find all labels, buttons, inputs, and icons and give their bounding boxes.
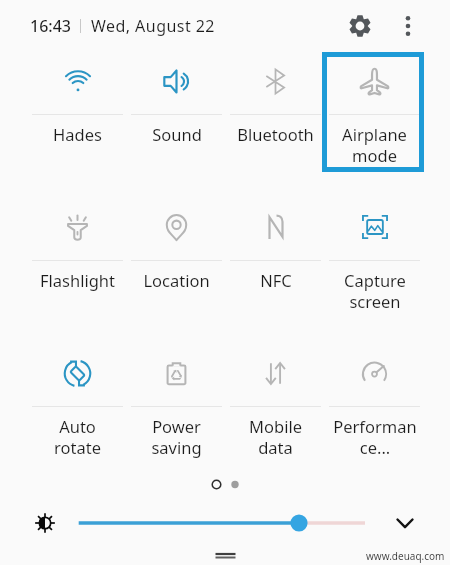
staticText: NFC: [260, 269, 292, 291]
button[interactable]: Auto rotate: [28, 344, 127, 464]
button[interactable]: Bluetooth: [226, 52, 325, 172]
staticText: Location: [143, 269, 210, 291]
staticText: Sound: [152, 123, 202, 145]
staticText: Power saving: [151, 415, 202, 459]
button[interactable]: Flashlight: [28, 198, 127, 318]
button[interactable]: Power saving: [127, 344, 226, 464]
button[interactable]: Sound: [127, 52, 226, 172]
staticText: Auto rotate: [54, 415, 101, 459]
button[interactable]: More options: [388, 6, 428, 46]
staticText: Airplane mode: [342, 123, 407, 167]
button[interactable]: Performan ce...: [325, 344, 424, 464]
button[interactable]: Expand quick settings: [388, 506, 422, 540]
staticText: Wed, August 22: [91, 15, 215, 37]
staticText: Hades: [53, 123, 102, 145]
staticText: Performan ce...: [333, 415, 417, 459]
staticText: www.deuaq.com: [366, 549, 445, 563]
button[interactable]: Airplane mode: [325, 52, 424, 172]
staticText: Bluetooth: [237, 123, 314, 145]
staticText: Mobile data: [249, 415, 302, 459]
staticText: Flashlight: [40, 269, 115, 291]
button[interactable]: Mobile data: [226, 344, 325, 464]
button[interactable]: Capture screen: [325, 198, 424, 318]
staticText: 16:43: [30, 15, 71, 37]
button[interactable]: NFC: [226, 198, 325, 318]
staticText: Capture screen: [344, 269, 406, 313]
button[interactable]: Settings: [338, 4, 382, 48]
button[interactable]: Hades: [28, 52, 127, 172]
button[interactable]: Location: [127, 198, 226, 318]
